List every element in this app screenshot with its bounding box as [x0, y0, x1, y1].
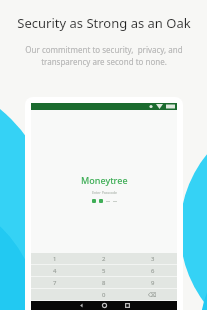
button[interactable]: 5 [79, 265, 128, 276]
button[interactable]: 1 [31, 253, 79, 264]
staticText: 7 [53, 279, 57, 287]
button[interactable]: Recents [123, 301, 132, 310]
button[interactable]: Home [100, 301, 109, 310]
button[interactable]: Back [77, 301, 86, 310]
staticText: Our commitment to security, privacy, and… [25, 44, 183, 68]
staticText: Moneytree [81, 174, 128, 186]
staticText: ⌫ [148, 291, 157, 298]
button[interactable]: 2 [79, 253, 128, 264]
staticText: 0 [102, 291, 106, 299]
button[interactable]: 0 [79, 289, 128, 300]
staticText: 6 [151, 267, 155, 275]
button[interactable]: ⌫ [128, 289, 177, 300]
staticText: 9 [151, 279, 155, 287]
staticText: Enter Passcode [92, 190, 118, 195]
staticText: 4 [53, 267, 57, 275]
staticText: 8 [102, 279, 106, 287]
button[interactable]: 3 [128, 253, 177, 264]
button[interactable]: 6 [128, 265, 177, 276]
button[interactable]: 7 [31, 277, 79, 288]
button[interactable]: 4 [31, 265, 79, 276]
button[interactable]: 9 [128, 277, 177, 288]
staticText: Security as Strong as an Oak [17, 14, 191, 32]
staticText: 3 [151, 255, 155, 263]
button[interactable]: 8 [79, 277, 128, 288]
staticText: 5 [102, 267, 106, 275]
staticText: 2 [102, 255, 106, 263]
staticText: 1 [53, 255, 57, 263]
